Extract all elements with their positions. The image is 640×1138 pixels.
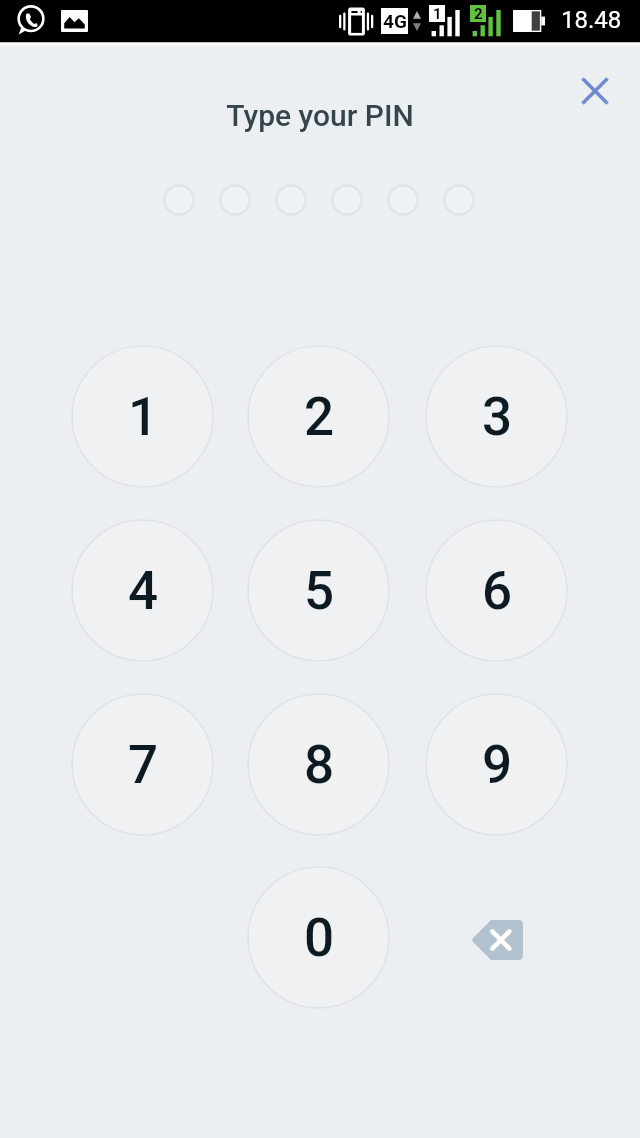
- button[interactable]: 4: [71, 519, 214, 662]
- staticText: 0: [304, 907, 335, 969]
- staticText: 1: [433, 5, 442, 22]
- button[interactable]: 3: [425, 345, 568, 488]
- staticText: 3: [482, 386, 513, 448]
- staticText: 5: [304, 560, 335, 622]
- button[interactable]: 9: [425, 693, 568, 836]
- staticText: 4: [128, 560, 159, 622]
- staticText: 6: [482, 560, 513, 622]
- staticText: 8: [304, 734, 335, 796]
- button[interactable]: 1: [71, 345, 214, 488]
- staticText: 18.48: [561, 6, 622, 34]
- staticText: 9: [482, 734, 513, 796]
- button[interactable]: 8: [247, 693, 390, 836]
- button[interactable]: Backspace: [425, 868, 569, 1012]
- button[interactable]: Close: [563, 59, 627, 123]
- staticText: 1: [128, 386, 159, 448]
- button[interactable]: 6: [425, 519, 568, 662]
- button[interactable]: 5: [247, 519, 390, 662]
- staticText: 4G: [383, 10, 407, 32]
- button[interactable]: 7: [71, 693, 214, 836]
- staticText: Type your PIN: [0, 98, 640, 133]
- staticText: 2: [304, 386, 335, 448]
- staticText: 7: [128, 734, 159, 796]
- button[interactable]: 2: [247, 345, 390, 488]
- staticText: 2: [474, 5, 483, 22]
- button[interactable]: 0: [247, 866, 390, 1009]
